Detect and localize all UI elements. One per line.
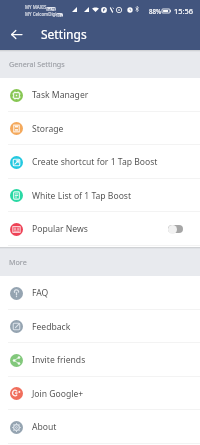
button[interactable]: Create shortcut for 1 Tap Boost	[0, 145, 200, 179]
staticText: VoLTE	[46, 7, 56, 11]
button[interactable]	[168, 222, 183, 236]
staticText: Storage	[32, 123, 190, 135]
staticText: General Settings	[9, 59, 65, 69]
staticText: MY CelcomDigi	[25, 11, 57, 17]
button[interactable]: About	[0, 410, 200, 444]
button[interactable]: Storage	[0, 112, 200, 145]
staticText: Create shortcut for 1 Tap Boost	[32, 156, 190, 168]
staticText: FAQ	[32, 287, 190, 299]
staticText: Task Manager	[32, 89, 190, 101]
staticText: MY MAXIS	[25, 4, 47, 10]
staticText: 88%	[149, 7, 162, 15]
button[interactable]: Join Google+	[0, 377, 200, 410]
staticText: 15:56	[174, 6, 193, 16]
button[interactable]: FAQ	[0, 276, 200, 310]
button[interactable]: White List of 1 Tap Boost	[0, 179, 200, 212]
staticText: 4G+	[56, 13, 63, 17]
button[interactable]: Task Manager	[0, 78, 200, 112]
staticText: More	[9, 257, 27, 267]
staticText: About	[32, 421, 190, 433]
staticText: White List of 1 Tap Boost	[32, 190, 190, 202]
staticText: Invite friends	[32, 354, 190, 366]
staticText: Feedback	[32, 321, 190, 333]
button[interactable]: Popular News	[0, 212, 200, 246]
button[interactable]: Feedback	[0, 310, 200, 343]
button[interactable]: Back	[6, 24, 27, 45]
staticText: Popular News	[32, 223, 168, 235]
button[interactable]: Invite friends	[0, 343, 200, 377]
staticText: Join Google+	[32, 388, 190, 400]
staticText: Settings	[41, 26, 87, 42]
